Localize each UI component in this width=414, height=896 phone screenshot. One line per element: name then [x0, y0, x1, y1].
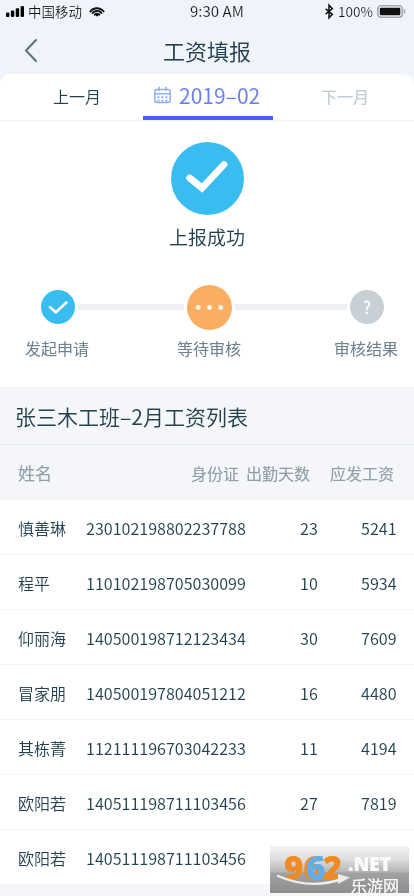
- staticText: 140500197804051212: [86, 681, 246, 704]
- staticText: 140500198712123434: [86, 626, 246, 649]
- staticText: 140511198711103456: [86, 846, 246, 869]
- staticText: 9:30 AM: [190, 0, 244, 22]
- staticText: 乐游网: [351, 873, 400, 896]
- button[interactable]: Back: [12, 31, 50, 69]
- button[interactable]: 仰丽海: [0, 610, 414, 664]
- staticText: 112111196703042233: [86, 736, 246, 759]
- button[interactable]: 欧阳若: [0, 775, 414, 829]
- button[interactable]: 发起申请: [24, 284, 91, 359]
- staticText: 欧阳若: [18, 846, 67, 869]
- staticText: 出勤天数: [246, 461, 311, 484]
- staticText: 7609: [361, 626, 397, 649]
- button[interactable]: 程平: [0, 555, 414, 609]
- staticText: 23: [300, 516, 318, 539]
- staticText: 下一月: [321, 84, 370, 107]
- staticText: .NET: [348, 851, 391, 877]
- staticText: 230102198802237788: [86, 516, 246, 539]
- button[interactable]: 其栋菁: [0, 720, 414, 774]
- staticText: 11: [300, 736, 318, 759]
- staticText: 冒家朋: [18, 681, 67, 704]
- staticText: 仰丽海: [18, 626, 67, 649]
- button[interactable]: 慎善琳: [0, 500, 414, 554]
- staticText: ?: [363, 294, 372, 319]
- staticText: 100%: [338, 1, 373, 21]
- staticText: 16: [300, 681, 318, 704]
- staticText: 30: [300, 626, 318, 649]
- staticText: 上报成功: [169, 223, 246, 251]
- button[interactable]: 下一月: [276, 74, 414, 120]
- button[interactable]: 冒家朋: [0, 665, 414, 719]
- staticText: 发起申请: [25, 336, 90, 359]
- staticText: 2019–02: [179, 80, 261, 110]
- button[interactable]: 2019–02: [138, 74, 276, 120]
- staticText: 其栋菁: [18, 736, 67, 759]
- staticText: 身份证: [191, 461, 240, 484]
- staticText: 中国移动: [28, 1, 82, 21]
- staticText: 6: [306, 845, 326, 890]
- staticText: 等待审核: [177, 336, 242, 359]
- staticText: 7819: [361, 791, 397, 814]
- button[interactable]: 上一月: [0, 74, 138, 120]
- staticText: 欧阳若: [18, 791, 67, 814]
- staticText: 10: [300, 571, 318, 594]
- staticText: 张三木工班–2月工资列表: [15, 401, 248, 431]
- staticText: 上一月: [53, 84, 102, 107]
- staticText: 慎善琳: [18, 516, 67, 539]
- staticText: 5241: [361, 516, 397, 539]
- staticText: 962: [284, 845, 343, 890]
- staticText: 5934: [361, 571, 397, 594]
- staticText: 27: [300, 791, 318, 814]
- staticText: 应发工资: [330, 461, 395, 484]
- staticText: 程平: [18, 571, 51, 594]
- staticText: 工资填报: [163, 34, 252, 66]
- staticText: 4480: [361, 681, 397, 704]
- staticText: 4194: [361, 736, 397, 759]
- button[interactable]: 欧阳若: [0, 830, 414, 884]
- button[interactable]: 等待审核: [176, 284, 243, 359]
- staticText: 姓名: [18, 460, 52, 485]
- staticText: 110102198705030099: [86, 571, 246, 594]
- staticText: 审核结果: [334, 336, 399, 359]
- button[interactable]: ?: [333, 284, 400, 359]
- staticText: 140511198711103456: [86, 791, 246, 814]
